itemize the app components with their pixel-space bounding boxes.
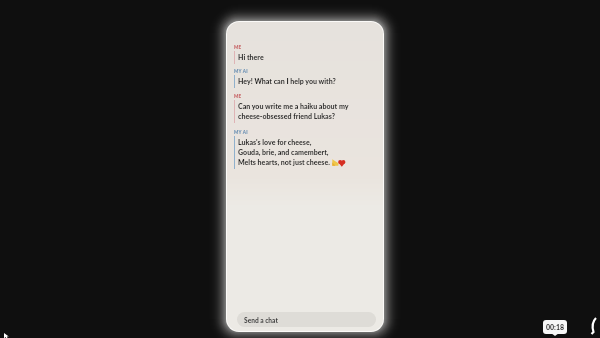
button[interactable]: Send a chat — [237, 312, 376, 327]
staticText: ME — [234, 93, 242, 99]
staticText: ME — [234, 44, 242, 50]
staticText: Send a chat — [244, 316, 278, 324]
staticText: 00:18 — [546, 323, 565, 331]
staticText: MY AI — [234, 129, 248, 135]
staticText: MY AI — [234, 68, 248, 74]
staticText: Gouda, brie, and camembert, — [238, 148, 329, 156]
staticText: Can you write me a haiku about my — [238, 102, 349, 110]
staticText: Melts hearts, not just cheese. — [238, 158, 330, 166]
staticText: Lukas's love for cheese, — [238, 138, 312, 146]
staticText: cheese-obsessed friend Lukas? — [238, 112, 335, 120]
staticText: Hey! What can I help you with? — [238, 77, 336, 85]
staticText: Hi there — [238, 53, 264, 61]
